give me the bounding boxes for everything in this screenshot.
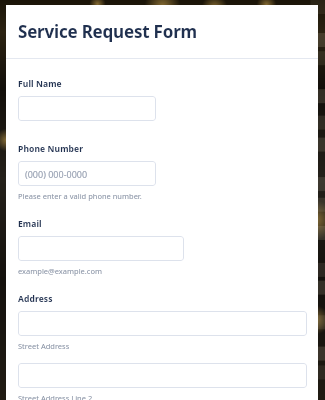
staticText: Please enter a valid phone number. bbox=[18, 191, 142, 201]
staticText: example@example.com bbox=[18, 266, 102, 276]
button[interactable]: Street Address Line 2 bbox=[18, 363, 307, 388]
staticText: Phone Number bbox=[18, 143, 84, 155]
staticText: Street Address Line 2 bbox=[18, 393, 93, 400]
button[interactable]: Email bbox=[18, 236, 184, 261]
staticText: (000) 000-0000 bbox=[25, 168, 88, 180]
staticText: Email bbox=[18, 218, 42, 230]
button[interactable]: Street Address bbox=[18, 311, 307, 336]
button[interactable]: Phone Number bbox=[18, 161, 156, 186]
staticText: Street Address bbox=[18, 341, 70, 351]
staticText: Address bbox=[18, 293, 53, 305]
button[interactable]: Full Name bbox=[18, 96, 156, 121]
staticText: Service Request Form bbox=[18, 20, 197, 43]
staticText: Full Name bbox=[18, 78, 62, 90]
